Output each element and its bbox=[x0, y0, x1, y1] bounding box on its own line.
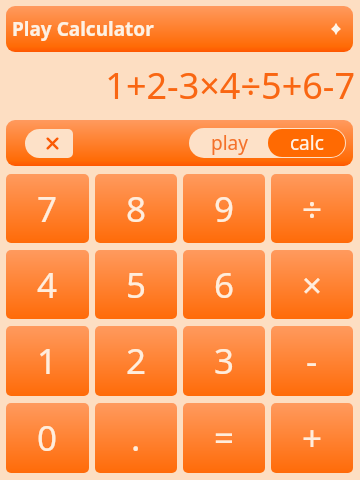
staticText: = bbox=[214, 414, 235, 462]
staticText: 2 bbox=[126, 337, 147, 385]
staticText: 9 bbox=[214, 185, 235, 233]
staticText: . bbox=[131, 414, 141, 462]
button[interactable]: Play Calculator bbox=[6, 6, 353, 52]
button[interactable]: + bbox=[271, 403, 353, 473]
staticText: 8 bbox=[126, 185, 147, 233]
staticText: calc bbox=[290, 130, 324, 156]
button[interactable]: play bbox=[189, 128, 269, 158]
staticText: 5 bbox=[126, 261, 147, 309]
staticText: Play Calculator bbox=[12, 16, 154, 42]
button[interactable]: 7 bbox=[6, 174, 89, 243]
button[interactable]: Clear bbox=[25, 129, 73, 158]
staticText: 3 bbox=[214, 337, 235, 385]
button[interactable]: 0 bbox=[6, 403, 89, 473]
button[interactable]: 5 bbox=[95, 250, 177, 319]
staticText: × bbox=[302, 261, 323, 309]
staticText: 0 bbox=[37, 414, 58, 462]
staticText: 1+2-3×4÷5+6-7 bbox=[0, 61, 355, 110]
button[interactable]: calc bbox=[268, 129, 345, 157]
button[interactable]: - bbox=[271, 326, 353, 396]
button[interactable]: ÷ bbox=[271, 174, 353, 243]
staticText: 7 bbox=[37, 185, 58, 233]
button[interactable]: 2 bbox=[95, 326, 177, 396]
staticText: ÷ bbox=[302, 185, 323, 233]
staticText: 6 bbox=[214, 261, 235, 309]
button[interactable]: 3 bbox=[183, 326, 265, 396]
button[interactable]: . bbox=[95, 403, 177, 473]
button[interactable]: Options bbox=[324, 17, 348, 41]
button[interactable]: 4 bbox=[6, 250, 89, 319]
button[interactable]: × bbox=[271, 250, 353, 319]
button[interactable]: 1 bbox=[6, 326, 89, 396]
staticText: + bbox=[302, 414, 323, 462]
staticText: play bbox=[211, 130, 248, 156]
staticText: 1 bbox=[37, 337, 58, 385]
staticText: 4 bbox=[37, 261, 58, 309]
staticText: - bbox=[306, 337, 318, 385]
button[interactable]: 9 bbox=[183, 174, 265, 243]
button[interactable]: 6 bbox=[183, 250, 265, 319]
button[interactable]: 8 bbox=[95, 174, 177, 243]
button[interactable]: = bbox=[183, 403, 265, 473]
